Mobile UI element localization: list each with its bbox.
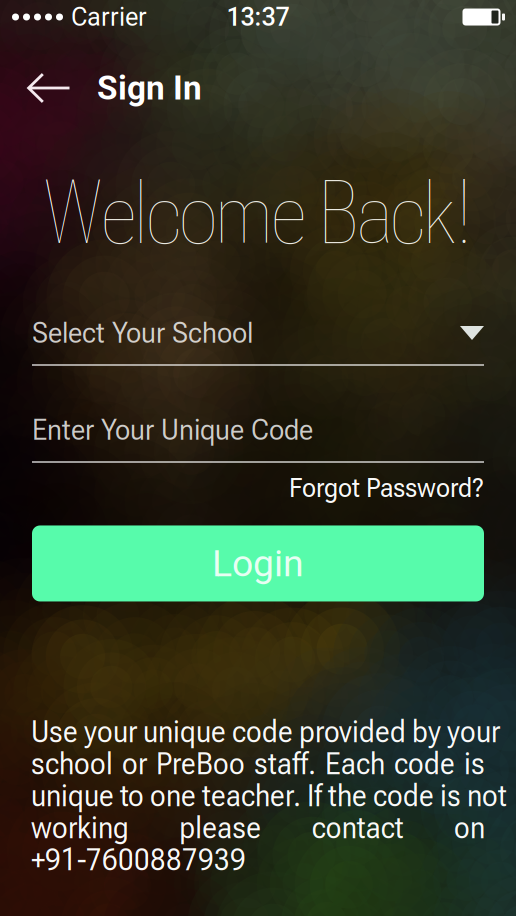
button[interactable]: Select Your School — [32, 316, 484, 366]
staticText: Carrier — [71, 2, 147, 32]
staticText: code — [232, 714, 293, 750]
staticText: PreBoo — [156, 746, 245, 782]
staticText: code — [394, 746, 455, 782]
staticText: code — [373, 778, 434, 814]
staticText: on — [454, 810, 485, 846]
staticText: school — [31, 746, 113, 782]
staticText: unique — [31, 778, 114, 814]
staticText: or — [122, 746, 147, 782]
staticText: one — [150, 778, 196, 814]
button[interactable]: Enter Your Unique Code — [32, 413, 484, 463]
staticText: working — [31, 810, 129, 846]
staticText: Select Your School — [32, 316, 253, 350]
staticText: Login — [212, 542, 304, 585]
staticText: +91-7600887939 — [31, 842, 246, 878]
staticText: Forgot Password? — [289, 473, 484, 503]
button[interactable]: Back — [0, 63, 97, 113]
staticText: Sign In — [97, 68, 202, 108]
staticText: is — [440, 778, 461, 814]
staticText: not — [467, 778, 507, 814]
staticText: unique — [143, 714, 226, 750]
staticText: provided — [299, 714, 406, 750]
staticText: If — [307, 778, 322, 814]
staticText: to — [120, 778, 144, 814]
staticText: 13:37 — [226, 2, 289, 32]
staticText: Welcome Back! — [43, 161, 473, 264]
staticText: the — [328, 778, 367, 814]
button[interactable]: Forgot Password? — [289, 469, 484, 507]
staticText: is — [464, 746, 485, 782]
button[interactable]: Login — [32, 525, 484, 601]
staticText: your — [84, 714, 137, 750]
staticText: teacher. — [202, 778, 301, 814]
staticText: Enter Your Unique Code — [32, 413, 313, 447]
staticText: contact — [312, 810, 404, 846]
staticText: staff. — [254, 746, 316, 782]
staticText: your — [447, 714, 500, 750]
staticText: please — [179, 810, 261, 846]
staticText: by — [412, 714, 441, 750]
staticText: Each — [325, 746, 385, 782]
staticText: Use — [31, 714, 78, 750]
